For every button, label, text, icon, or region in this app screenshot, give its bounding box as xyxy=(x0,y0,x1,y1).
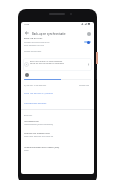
button[interactable]: Openen xyxy=(87,63,90,66)
staticText: Geen xyxy=(24,149,29,152)
staticText: 10:05 xyxy=(24,23,30,26)
button[interactable]: Terug xyxy=(23,29,30,36)
button[interactable]: Opslagruimte beheren xyxy=(24,102,47,105)
button[interactable]: Koop 100 GB voor €1,99/mnd xyxy=(24,92,53,95)
staticText: 8,6 GB van 15 GB gebruikt xyxy=(24,84,47,86)
staticText: Back-up en synchronisatie xyxy=(32,32,66,36)
button[interactable] xyxy=(23,58,92,71)
staticText: Google One xyxy=(79,84,90,86)
staticText: Gebruik van mobiele data xyxy=(24,132,50,135)
staticText: kunt bekijken op al je xyxy=(24,44,44,47)
staticText: BACK-UPS xyxy=(24,114,33,116)
button[interactable] xyxy=(24,131,91,138)
staticText: Apparaatmappen back-uppen (wifi) xyxy=(24,146,60,149)
button[interactable] xyxy=(24,145,91,152)
staticText: vanaf en free bij te jaar je verpogen xyxy=(30,62,65,65)
staticText: Back-ups maken in hoge kwaliteit xyxy=(30,60,63,63)
button[interactable] xyxy=(24,119,91,126)
staticText: Geen data gebruikt voor back-up xyxy=(24,135,54,138)
button[interactable]: Back-up en sync xyxy=(24,36,43,39)
staticText: Uploadgrootte xyxy=(24,120,39,123)
button[interactable]: Account xyxy=(87,32,91,36)
button[interactable]: Google-account wijz. xyxy=(24,50,42,52)
staticText: Hoge kwaliteit (gratis onbeperkt) xyxy=(24,123,54,126)
button[interactable]: Aan xyxy=(84,40,91,44)
staticText: Google-account zodat je ze xyxy=(24,41,50,44)
